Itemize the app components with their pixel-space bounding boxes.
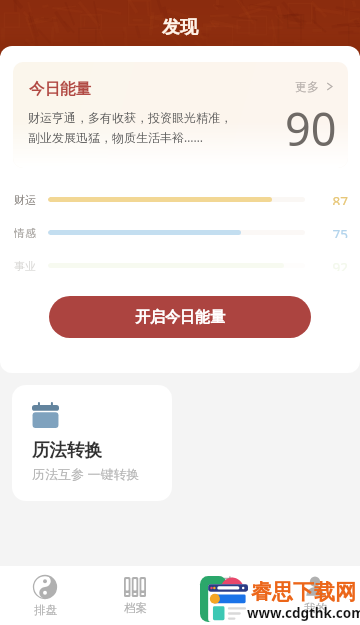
button[interactable]: 档案	[90, 566, 180, 625]
staticText: 副业发展迅猛，物质生活丰裕……	[28, 129, 203, 145]
staticText: 财运亨通，多有收获，投资眼光精准，	[28, 110, 232, 125]
staticText: 更多	[295, 79, 319, 94]
staticText: 档案	[124, 601, 147, 615]
staticText: 情感	[14, 226, 48, 238]
staticText: 排盘	[34, 603, 57, 617]
button[interactable]: 更多	[295, 79, 334, 94]
staticText: 开启今日能量	[135, 308, 225, 327]
staticText: 历法互参 一键转换	[32, 465, 140, 483]
staticText: 日历	[214, 601, 237, 615]
button[interactable]: 历法转换	[12, 385, 172, 501]
other: 日历	[214, 576, 236, 597]
button[interactable]: 排盘	[0, 566, 90, 625]
other: 档案	[124, 577, 146, 597]
staticText: 87	[305, 193, 348, 205]
other: 我的	[304, 576, 326, 597]
staticText: 75	[305, 226, 348, 238]
other: 排盘	[33, 575, 57, 599]
staticText: 发现	[162, 16, 198, 39]
staticText: 我的	[304, 601, 327, 615]
button[interactable]: 开启今日能量	[49, 296, 311, 338]
staticText: 90	[285, 98, 337, 159]
staticText: 92	[305, 259, 348, 271]
staticText: www.cdgthk.com	[247, 604, 360, 622]
staticText: 财运	[14, 193, 48, 205]
staticText: 今日能量	[29, 79, 91, 99]
button[interactable]: 我的	[270, 566, 360, 625]
staticText: 历法转换	[32, 439, 102, 461]
staticText: 事业	[14, 259, 48, 271]
staticText: 睿思下载网	[251, 579, 356, 605]
button[interactable]: 日历	[180, 566, 270, 625]
